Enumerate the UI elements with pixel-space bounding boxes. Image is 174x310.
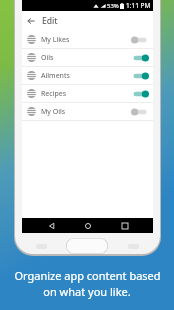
button[interactable]: On bbox=[131, 88, 149, 100]
button[interactable]: On bbox=[131, 52, 149, 64]
button[interactable]: Off bbox=[131, 34, 149, 46]
staticText: 1:11 PM bbox=[126, 1, 151, 10]
staticText: My Likes bbox=[41, 35, 70, 45]
staticText: My Oils bbox=[41, 107, 66, 117]
staticText: Recipes bbox=[41, 89, 67, 99]
button[interactable]: Oils bbox=[22, 49, 153, 66]
button[interactable]: On bbox=[131, 70, 149, 82]
button[interactable]: My Likes bbox=[22, 31, 153, 48]
button[interactable]: My Oils bbox=[22, 103, 153, 120]
button[interactable]: Back bbox=[44, 218, 59, 233]
button[interactable]: Back bbox=[22, 12, 39, 29]
staticText: 53% bbox=[107, 2, 119, 10]
button[interactable]: Recent apps bbox=[117, 218, 132, 233]
staticText: on what you like. bbox=[43, 284, 131, 299]
button[interactable]: Off bbox=[131, 106, 149, 118]
staticText: Oils bbox=[41, 53, 54, 63]
button[interactable]: Home button bbox=[66, 238, 108, 254]
staticText: Edit bbox=[42, 15, 58, 27]
button[interactable]: Recipes bbox=[22, 85, 153, 102]
button[interactable]: Ailments bbox=[22, 67, 153, 84]
staticText: Organize app content based bbox=[14, 268, 161, 283]
button[interactable]: Home bbox=[80, 218, 95, 233]
staticText: Ailments bbox=[41, 71, 70, 81]
